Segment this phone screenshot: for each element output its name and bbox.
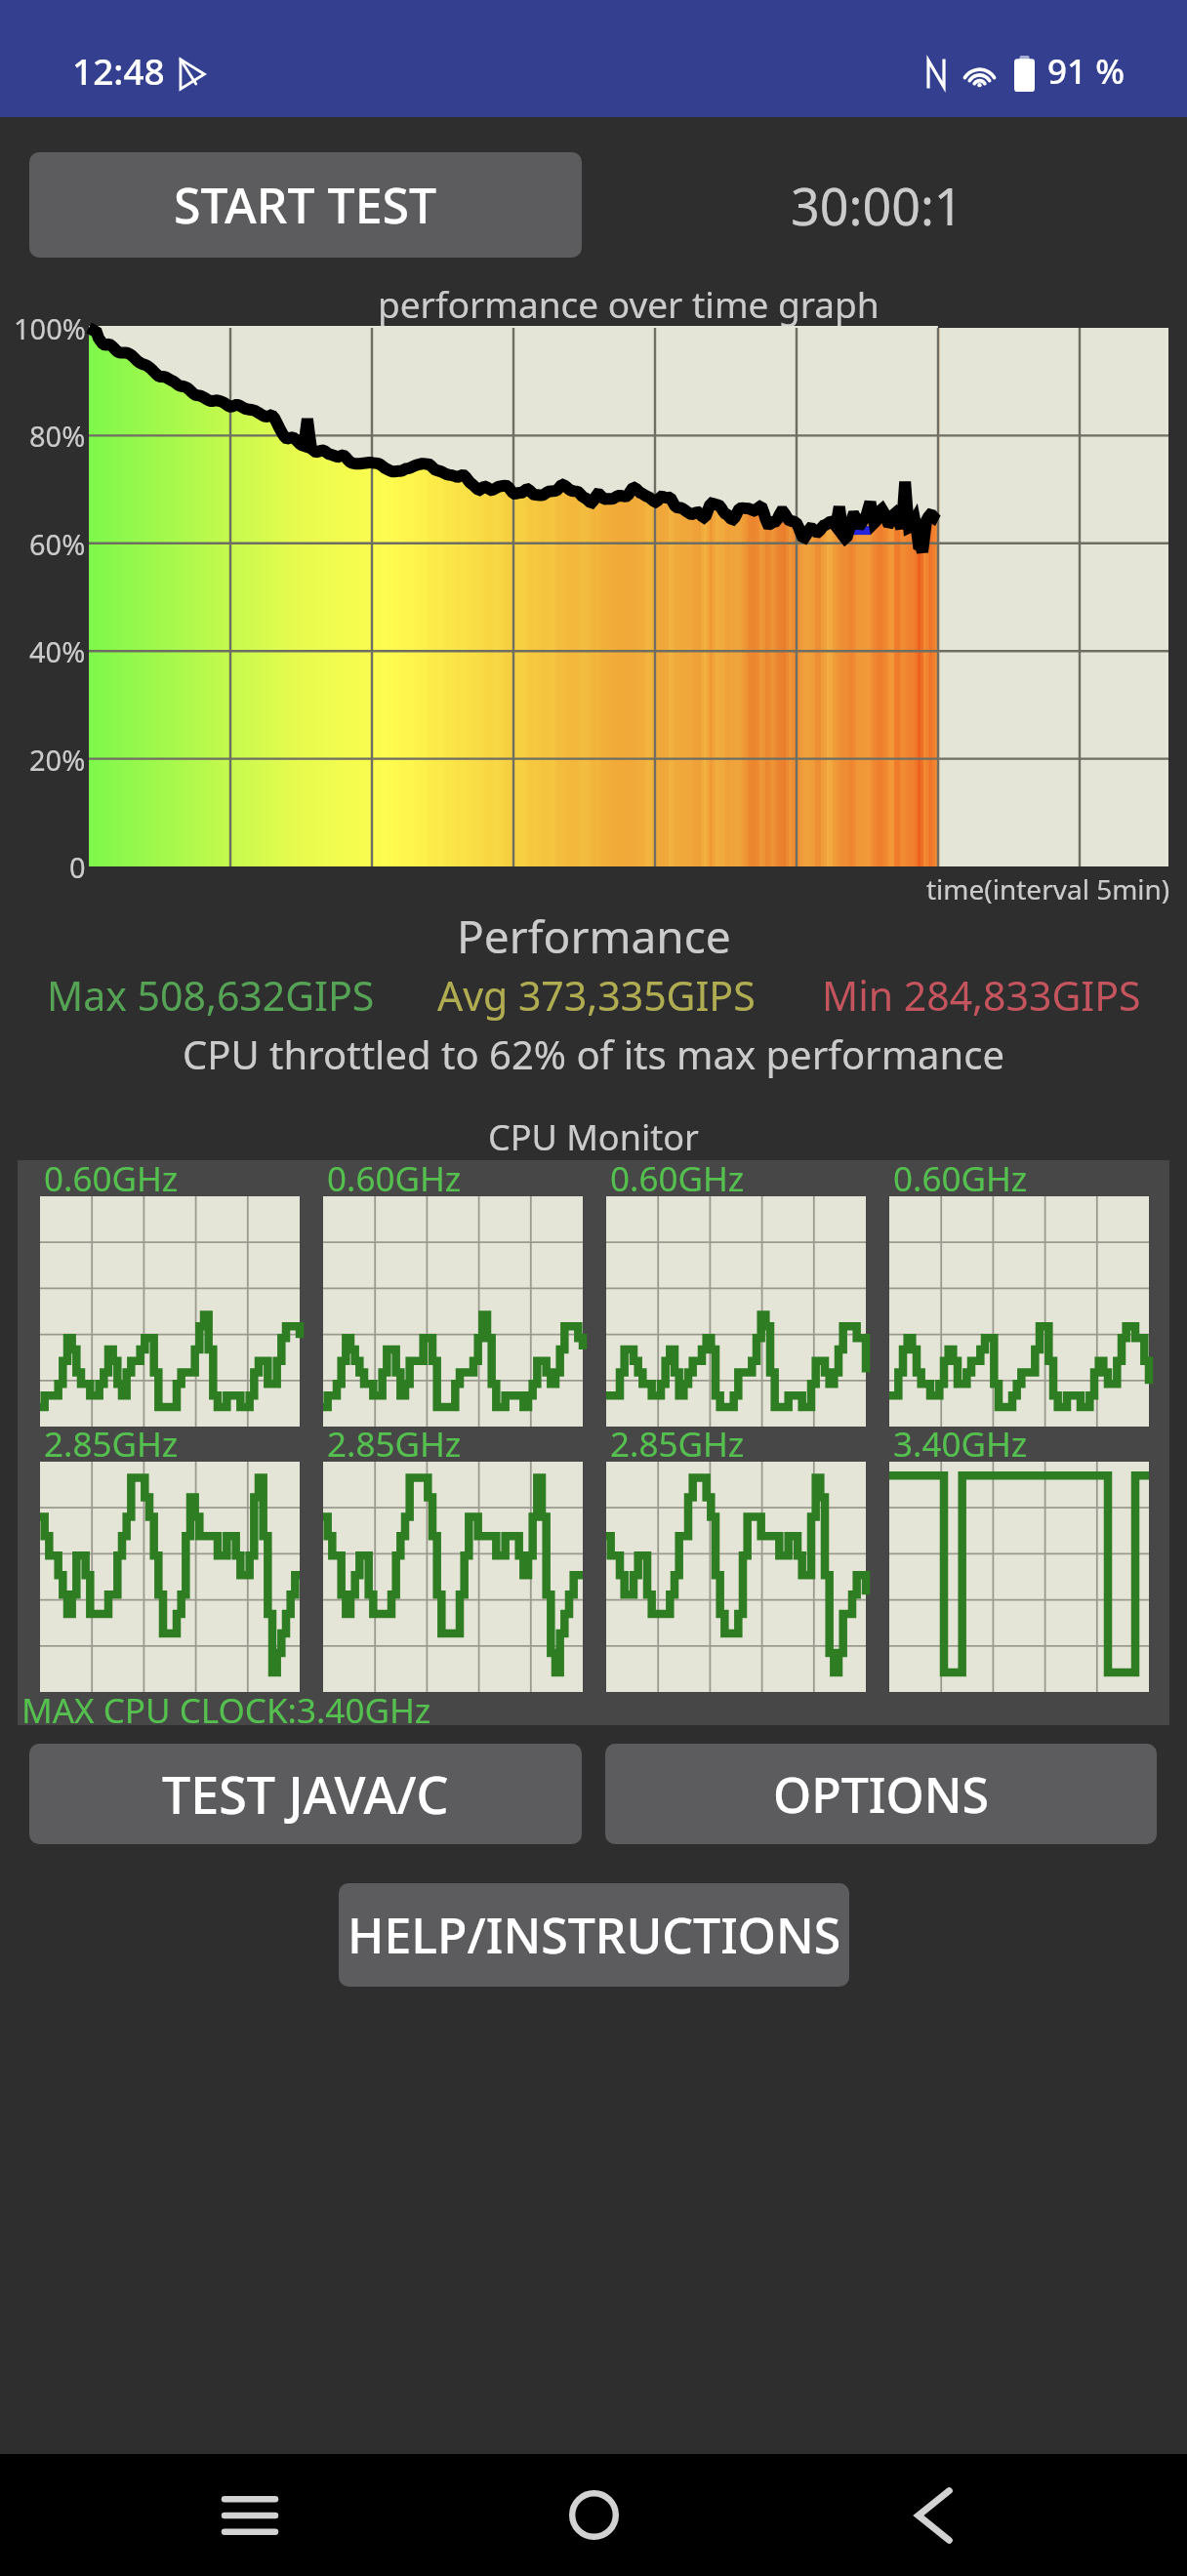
staticText: 2.85GHz: [610, 1421, 745, 1460]
staticText: 40%: [29, 632, 86, 670]
staticText: 20%: [29, 741, 86, 779]
staticText: 2.85GHz: [327, 1421, 462, 1460]
staticText: 0: [69, 848, 86, 886]
staticText: 0.60GHz: [327, 1155, 462, 1194]
staticText: CPU throttled to 62% of its max performa…: [183, 1027, 1004, 1078]
button[interactable]: TEST JAVA/C: [29, 1744, 582, 1844]
staticText: HELP/INSTRUCTIONS: [348, 1902, 841, 1968]
staticText: 80%: [29, 417, 86, 455]
button[interactable]: OPTIONS: [605, 1744, 1157, 1844]
staticText: START TEST: [174, 172, 437, 238]
staticText: 12:48: [72, 46, 165, 95]
button[interactable]: Recent apps: [191, 2454, 308, 2576]
staticText: Performance: [457, 906, 731, 964]
staticText: performance over time graph: [378, 279, 880, 326]
staticText: Min 284,833GIPS: [822, 968, 1141, 1023]
staticText: 3.40GHz: [893, 1421, 1028, 1460]
button[interactable]: Back: [875, 2454, 992, 2576]
staticText: 2.85GHz: [44, 1421, 179, 1460]
button[interactable]: Home: [535, 2454, 652, 2576]
staticText: TEST JAVA/C: [162, 1759, 449, 1829]
staticText: 0.60GHz: [893, 1155, 1028, 1194]
staticText: Avg 373,335GIPS: [437, 968, 756, 1023]
staticText: OPTIONS: [773, 1761, 989, 1828]
staticText: 30:00:1: [791, 171, 963, 240]
staticText: 0.60GHz: [610, 1155, 745, 1194]
staticText: 100%: [14, 309, 86, 347]
button[interactable]: START TEST: [29, 152, 582, 258]
staticText: Max 508,632GIPS: [47, 968, 375, 1023]
button[interactable]: HELP/INSTRUCTIONS: [339, 1883, 849, 1987]
staticText: 60%: [29, 525, 86, 563]
staticText: CPU Monitor: [488, 1113, 699, 1159]
staticText: time(interval 5min): [926, 870, 1170, 907]
staticText: 0.60GHz: [44, 1155, 179, 1194]
staticText: MAX CPU CLOCK:3.40GHz: [21, 1687, 431, 1726]
staticText: 91 %: [1047, 48, 1125, 95]
